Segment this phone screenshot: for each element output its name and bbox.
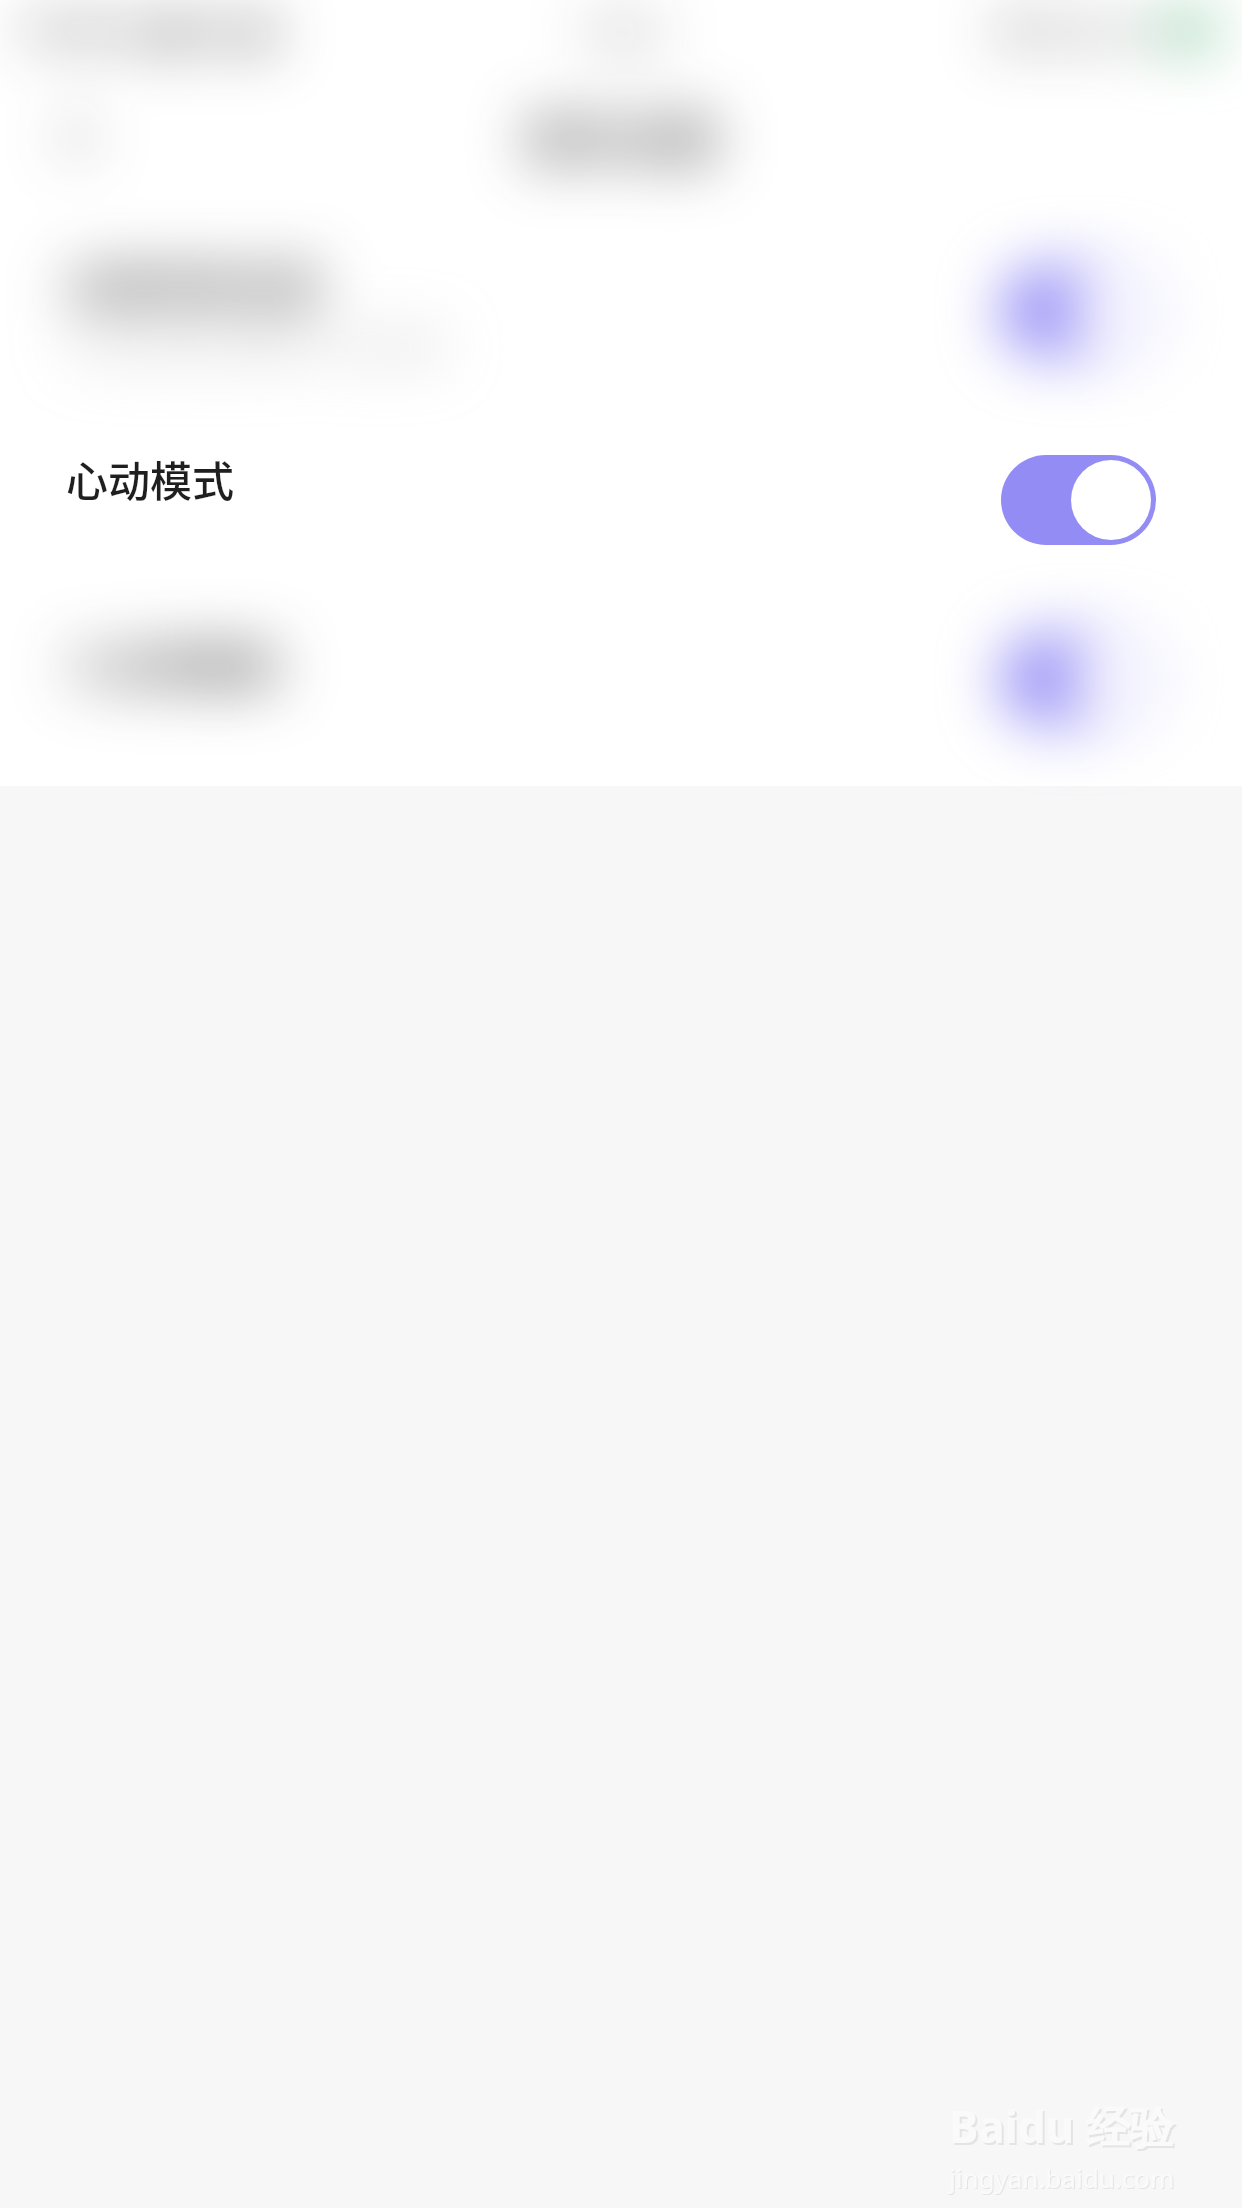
staticText: 抬腕亮屏设置 <box>68 254 321 315</box>
staticText: jingyan.baidu.com <box>950 2161 1176 2196</box>
button[interactable]: Toggle switch <box>1001 455 1156 545</box>
staticText: 更多设置 <box>525 102 718 172</box>
button[interactable]: Toggle switch <box>1001 634 1156 724</box>
staticText: 心动模式 <box>66 448 235 509</box>
staticText: Baidu 经验 <box>951 2098 1176 2158</box>
staticText: 中国移动 <box>14 11 142 51</box>
staticText: Baidu 经验 <box>949 2096 1174 2156</box>
button[interactable]: 心动模式 <box>0 419 1242 584</box>
staticText: 开启后抬起手腕即可点亮屏幕 <box>68 329 445 366</box>
button[interactable]: Toggle switch <box>1001 266 1156 356</box>
staticText: jingyan.baidu.com <box>949 2160 1175 2195</box>
staticText: 久坐提醒器 <box>68 633 279 694</box>
